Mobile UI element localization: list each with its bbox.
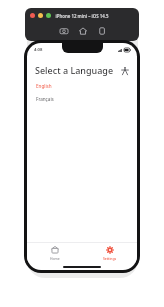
staticText: Français (36, 96, 54, 102)
staticText: Settings (103, 256, 117, 261)
button[interactable]: Settings (82, 243, 137, 263)
button[interactable]: English (27, 82, 137, 90)
button[interactable]: Accessibility (119, 65, 130, 76)
button[interactable]: Home (77, 25, 88, 36)
button[interactable]: Home (27, 243, 82, 263)
button[interactable] (38, 13, 43, 18)
button[interactable] (46, 13, 51, 18)
staticText: iPhone 12 mini – iOS 14.5 (55, 13, 109, 19)
staticText: Home (50, 256, 60, 261)
button[interactable]: Rotate device (96, 25, 107, 36)
staticText: 4:08 (34, 47, 43, 53)
button[interactable]: Français (27, 95, 137, 103)
staticText: Select a Language (35, 64, 119, 76)
button[interactable]: Screenshot (58, 25, 69, 36)
button[interactable] (30, 13, 35, 18)
staticText: English (36, 83, 52, 89)
